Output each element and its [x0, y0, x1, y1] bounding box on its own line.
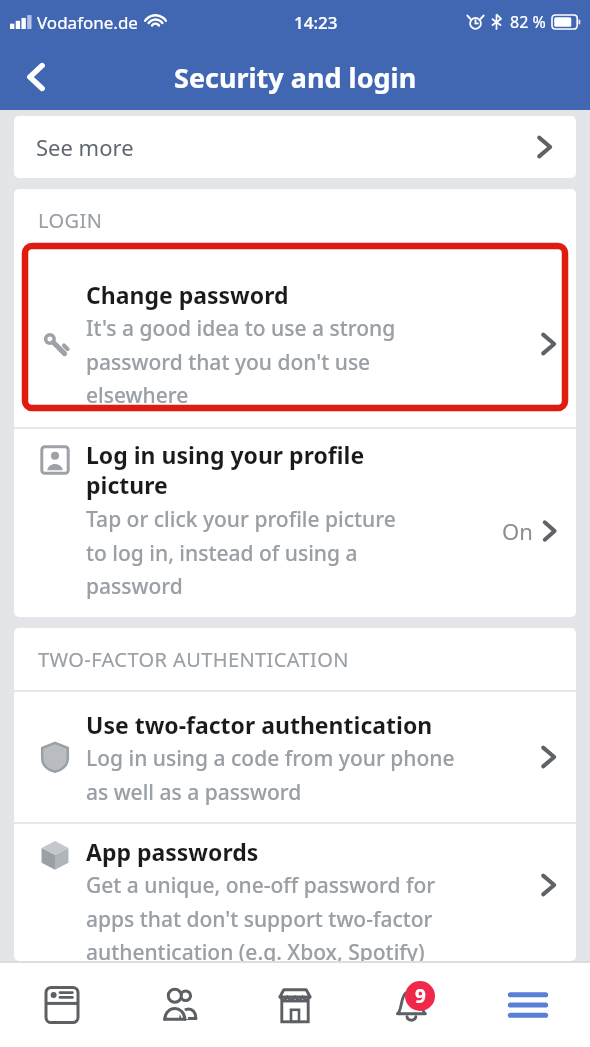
staticText: TWO-FACTOR AUTHENTICATION [38, 646, 349, 673]
staticText: Tap or click your profile picture to log… [86, 505, 396, 600]
staticText: 9 [415, 983, 426, 1009]
button[interactable]: Log in using your profile picture [14, 429, 576, 617]
staticText: See more [36, 132, 134, 162]
staticText: On [502, 516, 533, 546]
button[interactable]: Friends [125, 963, 233, 1047]
staticText: Get a unique, one-off password for apps … [86, 871, 436, 961]
button[interactable]: News Feed [8, 963, 116, 1047]
button[interactable]: See more [14, 116, 576, 178]
staticText: App passwords [86, 836, 259, 867]
staticText: LOGIN [38, 207, 103, 234]
staticText: Log in using your profile picture [86, 439, 365, 501]
staticText: Change password [86, 279, 289, 310]
staticText: 14:23 [294, 11, 338, 34]
button[interactable]: Marketplace [241, 963, 349, 1047]
staticText: Use two-factor authentication [86, 709, 433, 740]
button[interactable]: Back [10, 51, 62, 103]
staticText: Security and login [174, 59, 417, 96]
staticText: Log in using a code from your phone as w… [86, 744, 455, 806]
staticText: It's a good idea to use a strong passwor… [86, 314, 396, 409]
button[interactable]: App passwords [14, 824, 576, 961]
button[interactable]: Change password [14, 261, 576, 427]
button[interactable]: Menu [474, 963, 582, 1047]
button[interactable]: Use two-factor authentication [14, 692, 576, 822]
button[interactable]: Notifications [357, 963, 465, 1047]
staticText: Vodafone.de [37, 11, 138, 34]
staticText: 82 % [510, 11, 546, 33]
